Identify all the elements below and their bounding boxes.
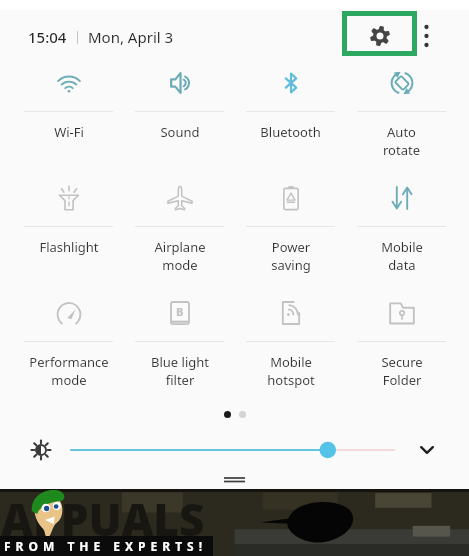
staticText: Flashlight — [39, 238, 99, 256]
staticText: Blue light filter — [151, 353, 209, 389]
button[interactable]: Brightness — [31, 440, 51, 460]
staticText: Airplane mode — [154, 238, 206, 274]
staticText: Mobile data — [381, 238, 423, 274]
button[interactable]: Airplane mode — [124, 175, 235, 290]
button[interactable]: Mobile data — [346, 175, 457, 290]
button[interactable]: Expand — [414, 438, 440, 462]
button[interactable]: Flashlight — [13, 175, 124, 290]
button[interactable]: Bluetooth — [235, 60, 346, 175]
button[interactable]: Sound — [124, 60, 235, 175]
button[interactable]: Performance mode — [13, 290, 124, 405]
staticText: Secure Folder — [381, 353, 423, 389]
staticText: Wi-Fi — [54, 123, 84, 141]
staticText: Performance mode — [29, 353, 109, 389]
staticText: Sound — [160, 123, 200, 141]
button[interactable]: Secure Folder — [346, 290, 457, 405]
button[interactable]: Settings — [347, 16, 412, 51]
button[interactable]: B — [124, 290, 235, 405]
staticText: Mobile hotspot — [267, 353, 315, 389]
staticText: APPUALS — [1, 489, 205, 549]
button[interactable]: Auto rotate — [346, 60, 457, 175]
staticText: FROM THE EXPERTS! — [4, 538, 208, 554]
staticText: 15:04 — [28, 27, 67, 47]
staticText: B — [176, 304, 184, 319]
button[interactable]: Wi-Fi — [13, 60, 124, 175]
staticText: Power saving — [271, 238, 311, 274]
staticText: Mon, April 3 — [88, 27, 174, 47]
button[interactable]: Power saving — [235, 175, 346, 290]
button[interactable]: More options — [417, 16, 436, 56]
staticText: Bluetooth — [260, 123, 321, 141]
staticText: Auto rotate — [383, 123, 420, 159]
button[interactable]: Mobile hotspot — [235, 290, 346, 405]
